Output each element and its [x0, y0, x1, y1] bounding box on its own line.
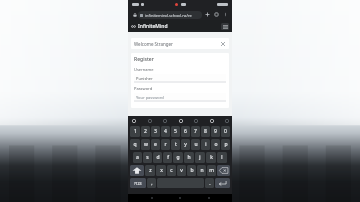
staticText: Register [134, 56, 154, 63]
staticText: u [194, 141, 198, 148]
staticText: c [170, 167, 173, 174]
button[interactable]: f [163, 152, 172, 163]
staticText: s [146, 154, 149, 161]
button[interactable]: g [173, 152, 183, 163]
button[interactable]: Menu [221, 23, 229, 30]
button[interactable]: c [167, 165, 176, 176]
button[interactable]: Enter [215, 178, 230, 188]
staticText: h [187, 154, 191, 161]
staticText: w [144, 141, 148, 148]
staticText: infinitemind.school.nz/re [145, 13, 192, 18]
button[interactable]: Shift [130, 165, 144, 176]
button[interactable]: e [151, 139, 160, 150]
staticText: 5 [174, 128, 177, 135]
button[interactable]: Page info [131, 11, 138, 18]
staticText: r [164, 141, 167, 148]
button[interactable]: Punisher [134, 74, 226, 82]
button[interactable]: m [207, 165, 216, 176]
staticText: f [167, 154, 169, 161]
button[interactable]: k [206, 152, 216, 163]
button[interactable]: More options [222, 11, 229, 18]
button[interactable]: Back [147, 194, 157, 202]
button[interactable]: Emoji [177, 117, 184, 124]
button[interactable]: u [191, 139, 200, 150]
button[interactable]: Voice [223, 117, 230, 124]
staticText: q [133, 141, 137, 148]
button[interactable]: Clipboard [146, 117, 153, 124]
button[interactable]: d [153, 152, 162, 163]
button[interactable]: o [211, 139, 220, 150]
staticText: b [190, 167, 194, 174]
button[interactable]: q [130, 139, 140, 150]
staticText: e [154, 141, 157, 148]
button[interactable]: y [181, 139, 190, 150]
staticText: p [224, 141, 228, 148]
button[interactable]: 0 [221, 126, 230, 137]
staticText: InfiniteMind [138, 23, 168, 30]
button[interactable]: 9 [211, 126, 220, 137]
button[interactable]: 4 [161, 126, 170, 137]
button[interactable]: j [195, 152, 205, 163]
staticText: g [176, 154, 180, 161]
button[interactable]: Your password [134, 93, 226, 101]
button[interactable]: l [217, 152, 227, 163]
button[interactable]: Welcome Stranger [131, 38, 229, 49]
button[interactable]: h [184, 152, 194, 163]
staticText: 9 [214, 128, 217, 135]
button[interactable]: ?123 [130, 178, 146, 188]
staticText: a [136, 154, 139, 161]
button[interactable]: s [143, 152, 152, 163]
staticText: j [199, 154, 201, 161]
button[interactable]: , [147, 178, 156, 188]
button[interactable]: Settings [208, 117, 215, 124]
button[interactable]: . [205, 178, 214, 188]
staticText: i [205, 141, 207, 148]
button[interactable]: w [141, 139, 150, 150]
staticText: 8 [204, 128, 207, 135]
button[interactable]: v [177, 165, 186, 176]
staticText: Welcome Stranger [134, 41, 173, 47]
button[interactable]: 8 [201, 126, 210, 137]
staticText: y [184, 141, 187, 148]
button[interactable]: i [201, 139, 210, 150]
staticText: d [156, 154, 160, 161]
staticText: 2 [144, 128, 147, 135]
button[interactable]: Backspace [217, 165, 230, 176]
staticText: n [200, 167, 204, 174]
staticText: x [160, 167, 163, 174]
staticText: Punisher [136, 76, 153, 81]
button[interactable]: 3 [151, 126, 160, 137]
button[interactable]: 1 [130, 126, 140, 137]
button[interactable]: New tab [204, 11, 211, 18]
staticText: 3 [154, 128, 157, 135]
staticText: k [210, 154, 213, 161]
button[interactable]: z [145, 165, 155, 176]
button[interactable]: n [197, 165, 206, 176]
button[interactable]: a [133, 152, 142, 163]
button[interactable]: Home [175, 194, 185, 202]
button[interactable]: r [161, 139, 170, 150]
staticText: 1 [134, 128, 137, 135]
button[interactable]: Tabs [213, 11, 220, 18]
button[interactable]: x [156, 165, 166, 176]
staticText: Your password [136, 95, 164, 100]
button[interactable]: 5 [171, 126, 180, 137]
staticText: m [209, 167, 214, 174]
button[interactable]: 6 [181, 126, 190, 137]
button[interactable]: Recents [204, 194, 214, 202]
button[interactable]: Translate [192, 117, 199, 124]
button[interactable]: t [171, 139, 180, 150]
button[interactable]: 7 [191, 126, 200, 137]
button[interactable]: Close [220, 41, 226, 47]
staticText: t [175, 141, 177, 148]
button[interactable]: b [187, 165, 196, 176]
button[interactable]: 2 [141, 126, 150, 137]
staticText: o [214, 141, 218, 148]
button[interactable]: infinitemind.school.nz/re [138, 11, 202, 19]
button[interactable]: p [221, 139, 230, 150]
staticText: Password [134, 86, 153, 91]
staticText: ?123 [134, 181, 142, 186]
button[interactable]: GIF [161, 117, 168, 124]
button[interactable]: Apps [130, 117, 137, 124]
